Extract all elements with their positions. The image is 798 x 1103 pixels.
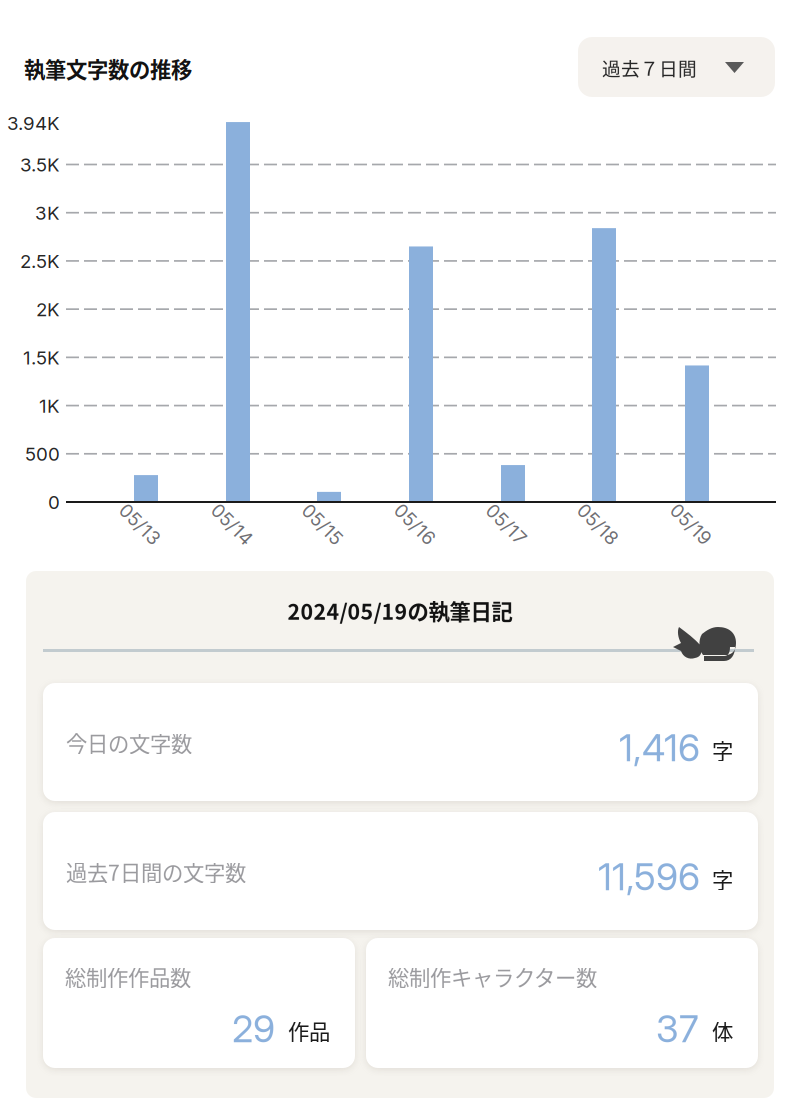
staticText: 1,416 xyxy=(619,725,700,770)
staticText: 作品 xyxy=(288,1015,330,1046)
button[interactable]: 総制作キャラクター数 xyxy=(366,938,758,1068)
button[interactable]: 過去７日間 — 期間を選択 xyxy=(578,37,775,97)
staticText: 2024/05/19の執筆日記 xyxy=(287,595,512,626)
staticText: 500 xyxy=(25,443,60,465)
staticText: 05/17 xyxy=(482,513,531,536)
button[interactable]: 総制作作品数 xyxy=(43,938,355,1068)
staticText: 過去７日間 xyxy=(602,54,697,81)
staticText: 3.94K xyxy=(7,112,60,135)
staticText: 0 xyxy=(48,491,60,514)
staticText: 1.5K xyxy=(23,346,60,369)
staticText: 2K xyxy=(36,298,60,321)
staticText: 05/14 xyxy=(207,513,257,536)
staticText: 総制作作品数 xyxy=(65,961,191,992)
staticText: 1K xyxy=(39,395,60,417)
staticText: 37 xyxy=(656,1006,699,1051)
staticText: 2.5K xyxy=(20,250,60,272)
staticText: 字 xyxy=(712,863,733,894)
staticText: 体 xyxy=(712,1015,733,1046)
staticText: 総制作キャラクター数 xyxy=(388,961,597,992)
staticText: 05/19 xyxy=(666,513,716,536)
staticText: 05/18 xyxy=(573,513,623,536)
staticText: 執筆文字数の推移 xyxy=(24,53,192,84)
staticText: 05/15 xyxy=(298,513,347,536)
staticText: 29 xyxy=(232,1006,275,1051)
staticText: 3K xyxy=(35,202,60,224)
button[interactable]: 今日の文字数 xyxy=(43,683,758,801)
staticText: 11,596 xyxy=(598,854,700,899)
staticText: 3.5K xyxy=(20,153,60,176)
staticText: 過去7日間の文字数 xyxy=(66,856,246,887)
staticText: 05/16 xyxy=(390,513,440,536)
staticText: 今日の文字数 xyxy=(66,727,192,758)
staticText: 字 xyxy=(712,734,733,765)
staticText: 05/13 xyxy=(115,513,165,536)
button[interactable]: 過去7日間の文字数 xyxy=(43,812,758,930)
